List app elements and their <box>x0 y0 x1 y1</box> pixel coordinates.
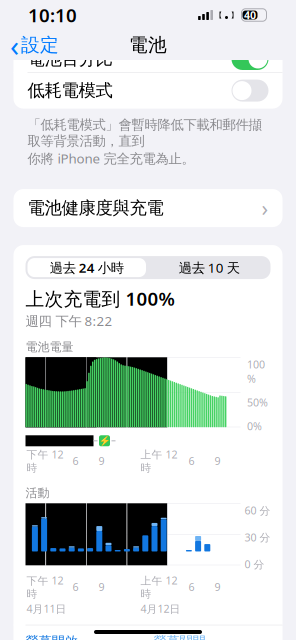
staticText: 活動 <box>25 486 49 500</box>
staticText: 50% <box>247 395 268 409</box>
staticText: 100% <box>247 357 265 386</box>
button[interactable]: 電池健康度與充電 <box>13 189 282 227</box>
staticText: 0% <box>247 419 262 433</box>
staticText: 「低耗電模式」會暫時降低下載和郵件擷取等背景活動，直到 你將 iPhone 完全… <box>27 117 261 167</box>
staticText: 0 分 <box>244 557 264 571</box>
staticText: 9 <box>214 454 220 468</box>
staticText: 6 <box>72 454 78 468</box>
staticText: 60 分 <box>244 503 270 517</box>
staticText: 電池健康度與充電 <box>27 197 163 219</box>
staticText: 下午 12 時 <box>26 447 63 475</box>
staticText: 電池電量 <box>25 340 73 354</box>
staticText: ‹ <box>10 25 19 64</box>
staticText: 4月12日 <box>140 602 180 616</box>
staticText: 40 <box>244 8 256 22</box>
staticText: 上午 12 時 <box>140 573 177 601</box>
staticText: › <box>261 194 268 222</box>
button[interactable]: 低耗電模式 <box>13 73 282 109</box>
staticText: 設定 <box>21 33 59 56</box>
button[interactable]: 過去 24 小時 <box>25 256 270 279</box>
staticText: 9 <box>98 580 104 594</box>
staticText: 4月11日 <box>26 602 66 616</box>
staticText: 螢幕開啟 <box>25 633 77 640</box>
button[interactable]: 電池百分比 <box>13 46 282 72</box>
staticText: 30 分 <box>244 530 270 544</box>
staticText: 低耗電模式 <box>27 80 112 101</box>
staticText: 週四 下午 8:22 <box>25 312 112 330</box>
staticText: 6 <box>188 454 194 468</box>
staticText: 9 <box>98 454 104 468</box>
staticText: 電池百分比 <box>27 48 112 70</box>
staticText: 下午 12 時 <box>26 573 63 601</box>
staticText: 上次充電到 100% <box>25 286 174 311</box>
button[interactable]: ‹ <box>0 21 59 68</box>
button[interactable]: Off <box>231 80 268 102</box>
staticText: 6 <box>72 580 78 594</box>
staticText: 10:10 <box>28 3 77 27</box>
staticText: 9 <box>214 580 220 594</box>
staticText: ⚡ <box>98 435 110 446</box>
button[interactable]: On <box>231 48 268 70</box>
staticText: 電池 <box>129 33 167 56</box>
staticText: 6 <box>188 580 194 594</box>
staticText: 過去 10 天 <box>179 259 240 276</box>
staticText: 過去 24 小時 <box>50 259 124 276</box>
staticText: 上午 12 時 <box>140 447 177 475</box>
staticText: 螢幕關閉 <box>153 633 205 640</box>
